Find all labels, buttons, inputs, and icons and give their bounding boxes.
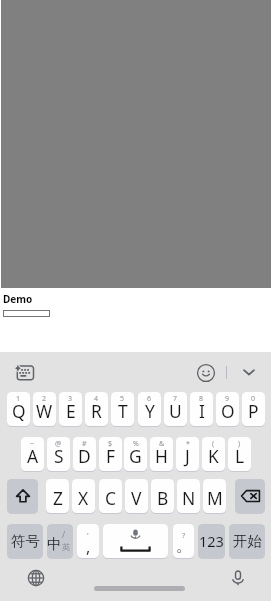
staticText: Z bbox=[53, 486, 63, 510]
staticText: F bbox=[106, 444, 116, 468]
staticText: ~ bbox=[30, 439, 35, 449]
staticText: Q bbox=[12, 399, 26, 423]
button[interactable]: 5 bbox=[111, 392, 134, 426]
button[interactable]: 符号 bbox=[7, 524, 43, 558]
staticText: H bbox=[155, 444, 168, 468]
staticText: 2 bbox=[42, 394, 47, 404]
staticText: S bbox=[54, 444, 64, 468]
staticText: 7 bbox=[173, 394, 178, 404]
staticText: ( bbox=[212, 439, 215, 449]
staticText: D bbox=[78, 444, 91, 468]
staticText: A bbox=[27, 444, 39, 468]
staticText: R bbox=[91, 399, 102, 423]
staticText: % bbox=[133, 439, 139, 449]
button[interactable]: Change language bbox=[25, 567, 46, 588]
staticText: 123 bbox=[199, 531, 224, 551]
staticText: & bbox=[159, 439, 165, 449]
button[interactable]: Hide keyboard bbox=[237, 360, 260, 383]
button[interactable]: ? bbox=[173, 524, 194, 558]
button[interactable]: Emoji bbox=[194, 361, 217, 384]
staticText: 4 bbox=[94, 394, 99, 404]
staticText: I bbox=[199, 399, 205, 423]
button[interactable]: 2 bbox=[33, 392, 56, 426]
staticText: U bbox=[169, 399, 182, 423]
button[interactable]: $ bbox=[99, 437, 122, 471]
button[interactable]: 开始 bbox=[229, 524, 265, 558]
button[interactable]: 9 bbox=[216, 392, 239, 426]
staticText: 符号 bbox=[11, 532, 40, 550]
button[interactable]: V bbox=[125, 479, 148, 513]
button[interactable]: % bbox=[124, 437, 147, 471]
button[interactable]: Backspace bbox=[235, 479, 265, 513]
staticText: E bbox=[66, 399, 76, 423]
button[interactable]: 6 bbox=[138, 392, 161, 426]
staticText: * bbox=[186, 439, 190, 449]
button[interactable]: 8 bbox=[190, 392, 213, 426]
staticText: 开始 bbox=[233, 532, 262, 550]
button[interactable]: # bbox=[73, 437, 96, 471]
staticText: @ bbox=[55, 439, 62, 449]
button[interactable]: Shift bbox=[7, 479, 38, 513]
button[interactable]: 中 bbox=[47, 524, 73, 558]
button[interactable]: Space bbox=[103, 524, 168, 558]
button[interactable]: 123 bbox=[198, 524, 225, 558]
staticText: $ bbox=[108, 439, 113, 449]
staticText: # bbox=[82, 439, 87, 449]
staticText: V bbox=[131, 486, 142, 510]
staticText: 。 bbox=[176, 536, 192, 556]
staticText: W bbox=[36, 399, 53, 423]
button[interactable]: AI keyboard bbox=[14, 362, 38, 384]
staticText: 中 bbox=[47, 535, 62, 553]
staticText: X bbox=[78, 486, 89, 510]
button[interactable] bbox=[3, 310, 50, 317]
button[interactable]: 3 bbox=[59, 392, 82, 426]
staticText: , bbox=[86, 536, 91, 558]
staticText: 8 bbox=[199, 394, 204, 404]
button[interactable]: B bbox=[151, 479, 174, 513]
staticText: K bbox=[208, 444, 219, 468]
staticText: M bbox=[207, 486, 223, 510]
button[interactable]: 7 bbox=[164, 392, 187, 426]
staticText: 0 bbox=[251, 394, 256, 404]
staticText: ' bbox=[87, 530, 89, 540]
staticText: 9 bbox=[225, 394, 230, 404]
staticText: J bbox=[185, 444, 190, 468]
staticText: P bbox=[248, 399, 259, 423]
button[interactable]: 0 bbox=[242, 392, 265, 426]
button[interactable]: Voice input bbox=[227, 567, 248, 588]
staticText: /英 bbox=[62, 529, 73, 552]
staticText: C bbox=[105, 486, 116, 510]
staticText: L bbox=[235, 444, 245, 468]
staticText: Demo bbox=[3, 292, 33, 306]
button[interactable]: M bbox=[203, 479, 226, 513]
staticText: ) bbox=[238, 439, 241, 449]
button[interactable]: 4 bbox=[85, 392, 108, 426]
staticText: Y bbox=[145, 399, 155, 423]
staticText: T bbox=[118, 399, 128, 423]
button[interactable]: 1 bbox=[7, 392, 30, 426]
button[interactable]: C bbox=[99, 479, 122, 513]
button[interactable]: N bbox=[177, 479, 200, 513]
staticText: 1 bbox=[16, 394, 21, 404]
staticText: ? bbox=[182, 530, 186, 540]
staticText: B bbox=[157, 486, 169, 510]
staticText: 3 bbox=[68, 394, 73, 404]
button[interactable]: ~ bbox=[21, 437, 44, 471]
button[interactable]: X bbox=[72, 479, 95, 513]
button[interactable]: @ bbox=[47, 437, 70, 471]
button[interactable]: ( bbox=[202, 437, 225, 471]
button[interactable]: & bbox=[150, 437, 173, 471]
button[interactable]: Z bbox=[46, 479, 69, 513]
button[interactable]: * bbox=[176, 437, 199, 471]
staticText: N bbox=[182, 486, 196, 510]
staticText: 5 bbox=[120, 394, 125, 404]
staticText: O bbox=[221, 399, 235, 423]
button[interactable]: ' bbox=[77, 524, 99, 558]
staticText: G bbox=[129, 444, 142, 468]
staticText: 6 bbox=[147, 394, 152, 404]
button[interactable]: ) bbox=[228, 437, 251, 471]
